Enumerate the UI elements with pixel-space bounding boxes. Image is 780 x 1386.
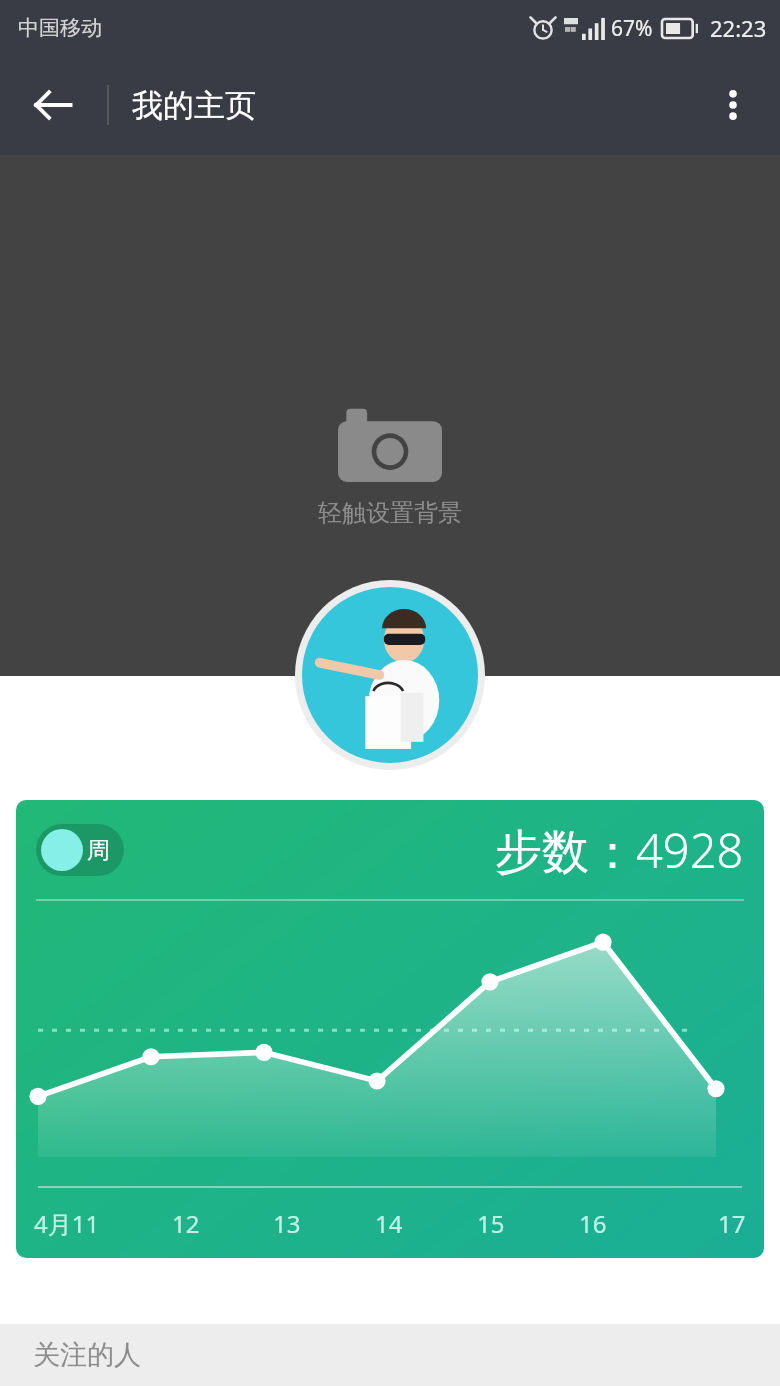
staticText: 中国移动 (18, 15, 102, 41)
button[interactable]: 关注的人 (0, 1324, 780, 1386)
button[interactable]: More options (694, 66, 772, 144)
staticText: 16 (579, 1207, 607, 1240)
staticText: 周 (87, 836, 110, 865)
staticText: 15 (477, 1207, 505, 1240)
button[interactable]: Set background image (318, 404, 462, 528)
button[interactable]: Back (14, 66, 92, 144)
button[interactable]: 周 (16, 800, 764, 1258)
staticText: 关注的人 (33, 1338, 141, 1372)
staticText: 我的主页 (132, 86, 256, 125)
staticText: 轻触设置背景 (318, 498, 462, 528)
button[interactable]: Profile photo (295, 580, 485, 770)
staticText: 22:23 (710, 13, 767, 43)
button[interactable]: 周 (41, 829, 119, 871)
staticText: 67% (611, 14, 653, 43)
staticText: 4月11 (34, 1207, 100, 1240)
staticText: 14 (375, 1207, 403, 1240)
staticText: 17 (718, 1207, 746, 1240)
staticText: 13 (273, 1207, 301, 1240)
staticText: 12 (172, 1207, 200, 1240)
staticText: 步数：4928 (495, 818, 744, 882)
